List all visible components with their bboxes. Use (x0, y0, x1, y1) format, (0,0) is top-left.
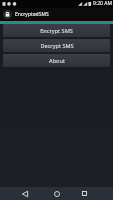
button[interactable]: Home (44, 187, 69, 200)
button[interactable]: Decrypt SMS (3, 39, 110, 52)
staticText: 9:20 AM (93, 0, 112, 7)
button[interactable]: Recent apps (72, 187, 97, 200)
button[interactable]: Encrypt SMS (3, 24, 110, 37)
staticText: EncryptedSMS (15, 11, 49, 18)
button[interactable]: Back (12, 187, 37, 200)
staticText: Encrypt SMS (40, 27, 73, 35)
staticText: About (49, 57, 65, 65)
button[interactable]: About (3, 54, 110, 67)
staticText: Decrypt SMS (40, 42, 74, 50)
